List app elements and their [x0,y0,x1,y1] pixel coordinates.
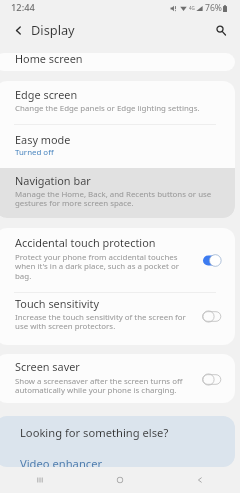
button[interactable]: Edge screen [0,81,235,125]
button[interactable]: Search [209,18,233,42]
button[interactable]: Home screen [0,53,235,71]
staticText: Edge screen [15,87,78,102]
button[interactable]: Navigation bar [0,168,235,218]
button[interactable]: Switch on [202,254,223,267]
button[interactable]: Navigate up [6,18,30,42]
button[interactable]: Home [80,467,160,493]
button[interactable]: Back [160,467,240,493]
staticText: Change the Edge panels or Edge lighting … [15,103,200,114]
staticText: Turned off [15,147,54,158]
staticText: Accidental touch protection [15,235,156,250]
staticText: Display [31,21,75,38]
staticText: Looking for something else? [20,425,169,440]
staticText: Video enhancer [20,456,103,467]
button[interactable]: Touch sensitivity [0,293,235,345]
staticText: 12:44 [11,1,35,14]
staticText: Touch sensitivity [15,296,100,311]
staticText: Protect your phone from accidental touch… [15,252,179,282]
staticText: Manage the Home, Back, and Recents butto… [15,189,212,209]
staticText: Show a screensaver after the screen turn… [15,376,183,396]
staticText: 76% [205,2,222,14]
button[interactable]: Looking for something else? [0,416,235,467]
button[interactable]: Switch off [202,373,223,386]
staticText: Screen saver [15,359,80,374]
button[interactable]: Switch off [202,310,223,323]
staticText: Increase the touch sensitivity of the sc… [15,312,186,332]
staticText: 4G [189,5,195,11]
button[interactable]: Accidental touch protection [0,228,235,292]
button[interactable]: Screen saver [0,354,235,403]
staticText: Easy mode [15,132,71,147]
button[interactable]: Easy mode [0,125,235,168]
staticText: Home screen [15,53,83,66]
button[interactable]: Recents [0,467,80,493]
staticText: Navigation bar [15,173,91,188]
